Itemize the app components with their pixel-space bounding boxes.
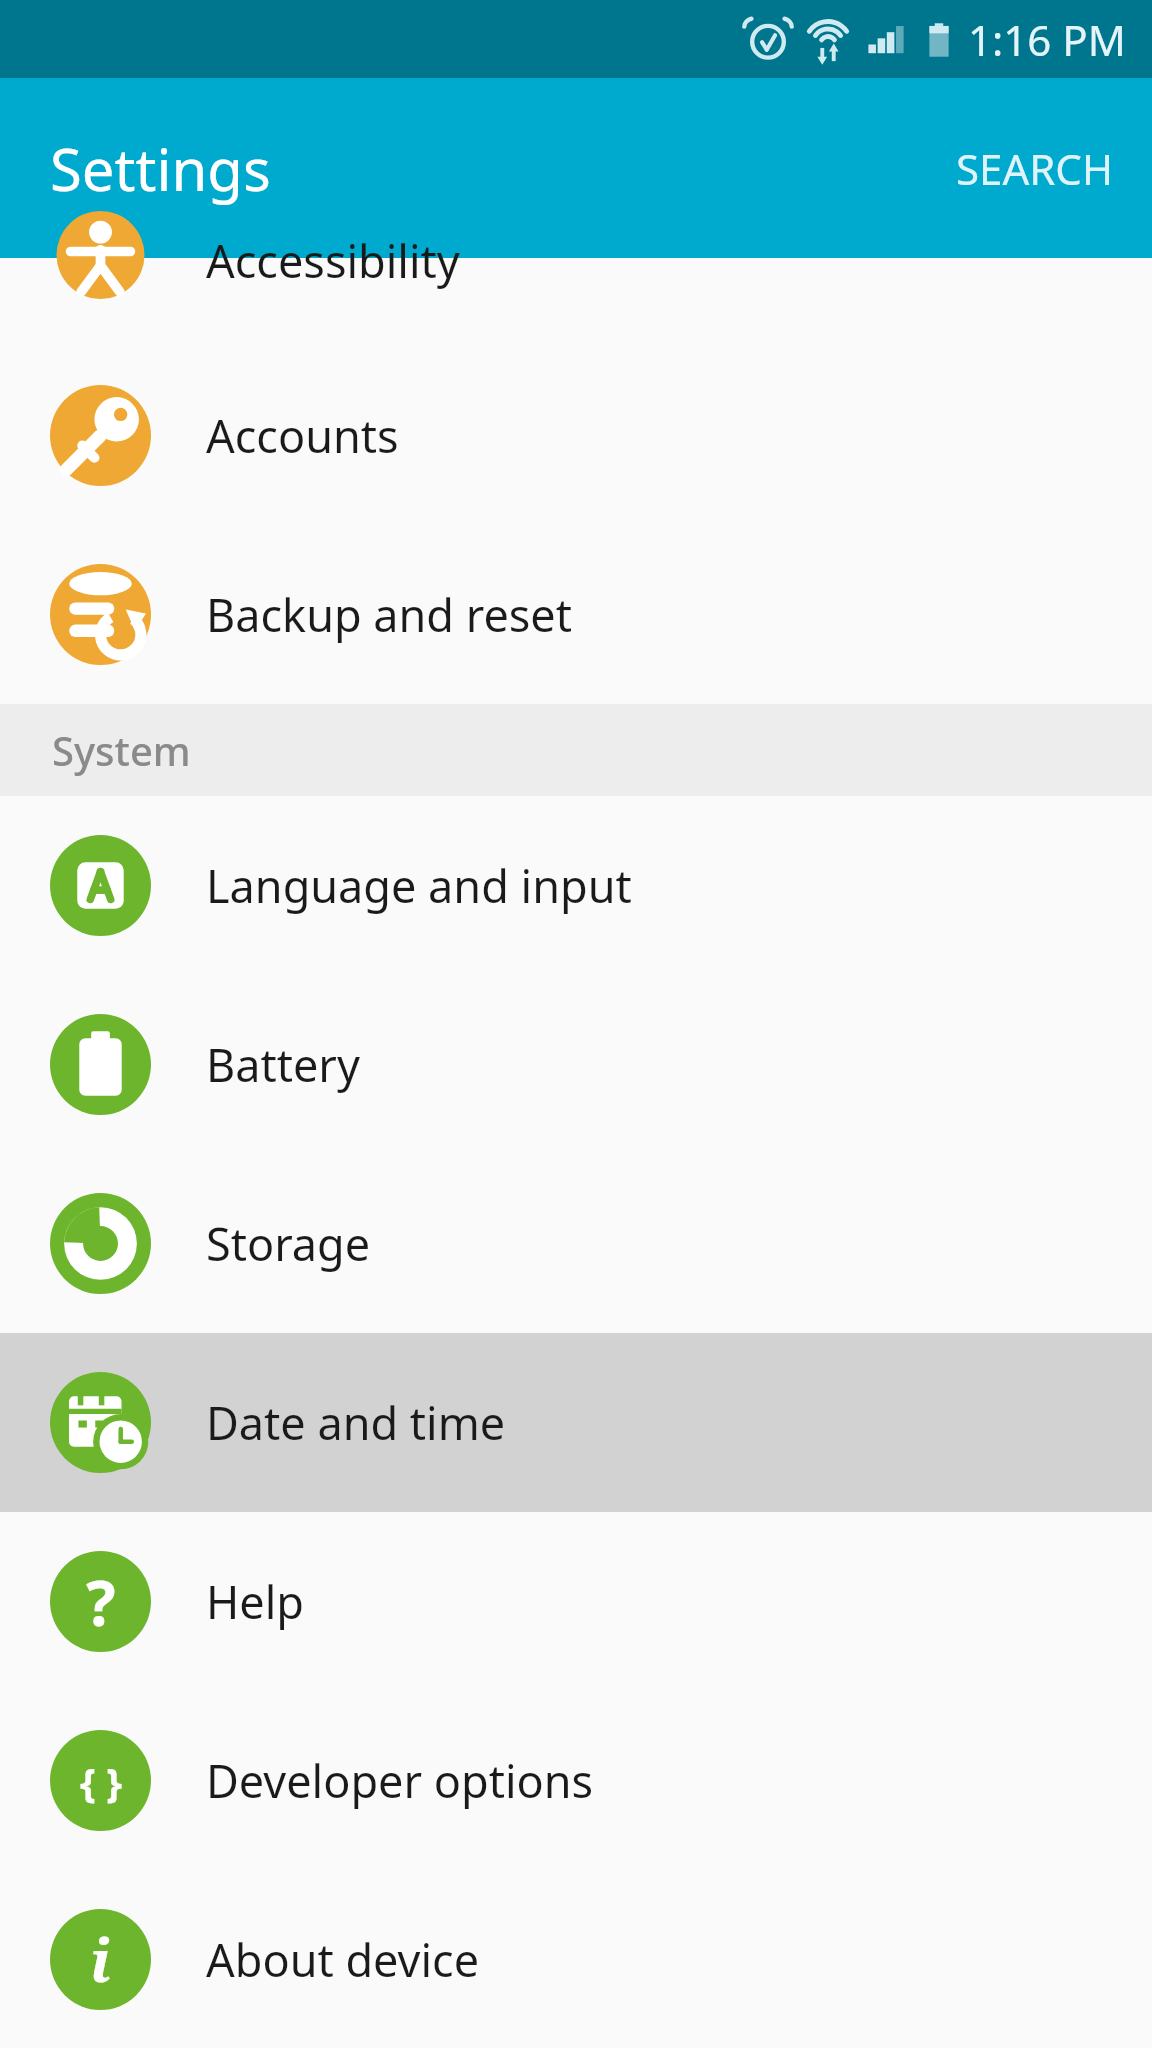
- staticText: i: [90, 1920, 111, 1999]
- button[interactable]: Accessibility: [0, 258, 1152, 346]
- button[interactable]: Storage: [0, 1154, 1152, 1333]
- staticText: Settings: [50, 129, 271, 208]
- button[interactable]: SEARCH: [918, 112, 1152, 225]
- staticText: Backup and reset: [206, 584, 572, 645]
- staticText: ?: [86, 1560, 116, 1644]
- button[interactable]: Language and input: [0, 796, 1152, 975]
- staticText: Battery: [206, 1034, 360, 1095]
- staticText: Accessibility: [206, 230, 460, 291]
- button[interactable]: Battery: [0, 975, 1152, 1154]
- button[interactable]: ?: [0, 1512, 1152, 1691]
- button[interactable]: { }: [0, 1691, 1152, 1870]
- button[interactable]: i: [0, 1870, 1152, 2048]
- staticText: Accounts: [206, 405, 399, 466]
- staticText: Language and input: [206, 855, 632, 916]
- staticText: Date and time: [206, 1392, 506, 1453]
- staticText: System: [52, 723, 191, 777]
- staticText: { }: [80, 1754, 122, 1808]
- button[interactable]: Date and time: [0, 1333, 1152, 1512]
- staticText: Developer options: [206, 1750, 594, 1811]
- button[interactable]: Accounts: [0, 346, 1152, 525]
- button[interactable]: Backup and reset: [0, 525, 1152, 704]
- staticText: About device: [206, 1929, 480, 1990]
- staticText: Storage: [206, 1213, 371, 1274]
- staticText: SEARCH: [956, 140, 1114, 197]
- staticText: 1:16 PM: [968, 11, 1126, 68]
- staticText: Help: [206, 1571, 305, 1632]
